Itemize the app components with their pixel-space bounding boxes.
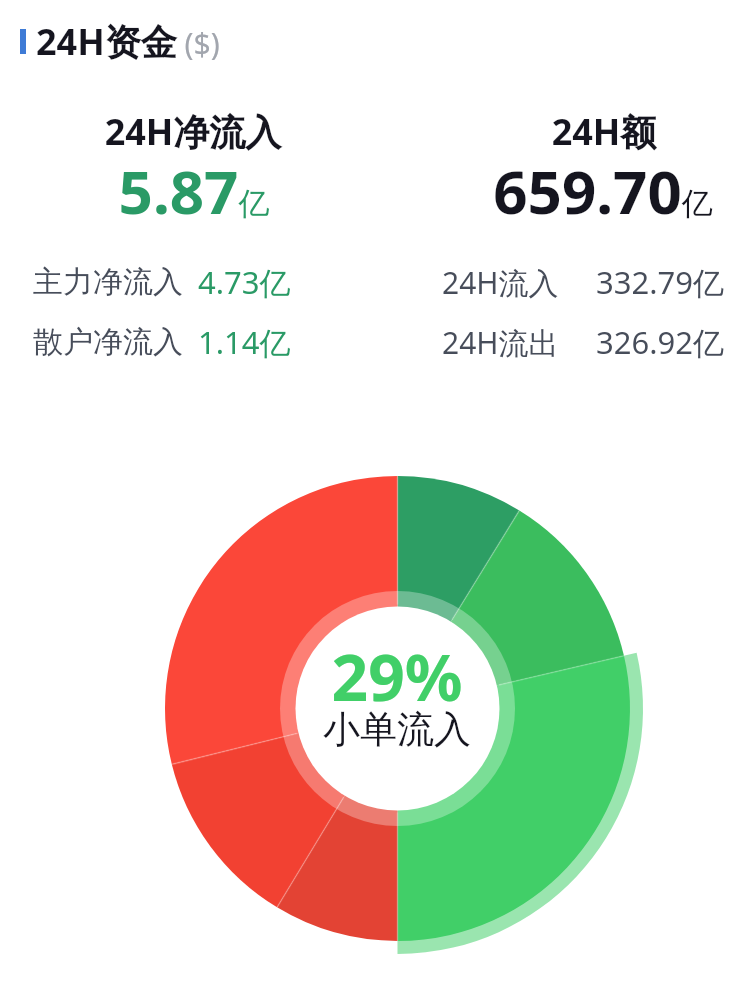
staticText: 326.92亿 xyxy=(596,321,724,363)
staticText: 659.70亿 xyxy=(403,150,750,232)
staticText: 24H资金 ($) xyxy=(36,17,220,66)
staticText: 小单流入 xyxy=(197,706,597,753)
staticText: 4.73亿 xyxy=(198,261,291,303)
staticText: 5.87亿 xyxy=(0,150,394,232)
staticText: 1.14亿 xyxy=(198,321,291,363)
staticText: 24H净流入 xyxy=(0,107,393,156)
button[interactable]: 24H流入 xyxy=(442,261,724,303)
button[interactable]: 散户净流入 xyxy=(33,321,291,363)
button[interactable]: 主力净流入 xyxy=(33,261,291,303)
button[interactable]: 24H 资金流向占比环形图 xyxy=(152,463,643,954)
staticText: 24H额 xyxy=(404,107,750,156)
button[interactable]: 24H资金 ($) xyxy=(20,17,228,66)
staticText: 散户净流入 xyxy=(33,323,183,361)
staticText: 29% xyxy=(197,633,597,720)
staticText: 332.79亿 xyxy=(596,261,724,303)
staticText: 主力净流入 xyxy=(33,263,183,301)
button[interactable]: 24H流出 xyxy=(442,321,724,363)
staticText: 24H流入 xyxy=(442,262,559,303)
staticText: 24H流出 xyxy=(442,322,559,363)
